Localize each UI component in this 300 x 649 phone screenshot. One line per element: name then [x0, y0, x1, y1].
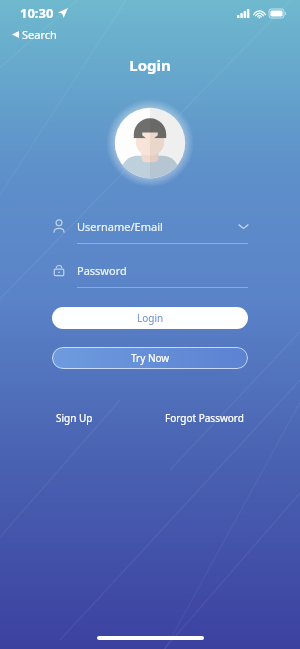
staticText: Search — [22, 27, 57, 42]
staticText: Login — [0, 55, 300, 75]
staticText: Login — [137, 311, 164, 325]
other: Account — [52, 219, 66, 233]
button[interactable]: Login — [52, 307, 248, 329]
button[interactable]: Try Now — [52, 347, 248, 369]
staticText: 10:30 — [20, 4, 54, 22]
staticText: Sign Up — [56, 411, 93, 425]
staticText: Username/Email — [77, 219, 239, 234]
staticText: Password — [77, 263, 248, 278]
staticText: Forgot Password — [165, 411, 244, 425]
button[interactable]: Account — [52, 215, 248, 244]
other: Show accounts — [239, 222, 248, 231]
staticText: Try Now — [131, 351, 170, 365]
button[interactable]: Password — [52, 259, 248, 288]
button[interactable]: Search — [10, 26, 59, 43]
button[interactable]: Forgot Password — [161, 407, 248, 429]
button[interactable]: Sign Up — [52, 407, 97, 429]
other: Password — [52, 263, 66, 277]
